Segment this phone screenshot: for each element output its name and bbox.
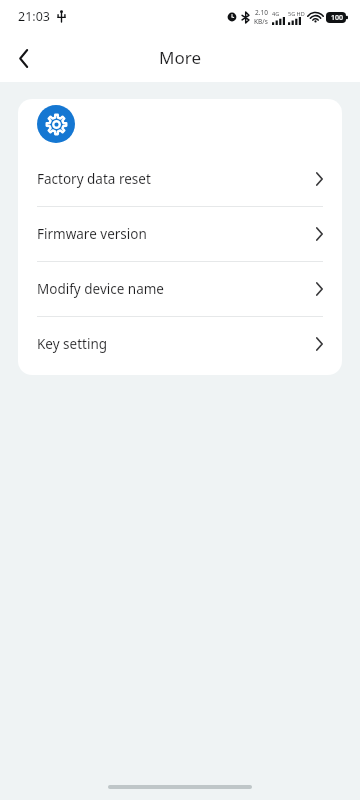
- button[interactable]: Settings: [37, 105, 75, 143]
- staticText: More: [159, 46, 201, 69]
- staticText: 5G HD: [288, 10, 305, 17]
- staticText: 2.10: [255, 8, 268, 17]
- button[interactable]: Firmware version: [18, 207, 342, 261]
- button[interactable]: Factory data reset: [18, 152, 342, 206]
- button[interactable]: Back: [0, 34, 48, 82]
- staticText: Modify device name: [37, 280, 316, 298]
- staticText: Key setting: [37, 335, 316, 353]
- staticText: 100: [331, 13, 344, 23]
- staticText: 4G: [272, 10, 280, 17]
- staticText: 21:03: [18, 8, 50, 25]
- staticText: Firmware version: [37, 225, 316, 243]
- staticText: Factory data reset: [37, 170, 316, 188]
- staticText: KB/s: [254, 17, 268, 26]
- button[interactable]: Key setting: [18, 317, 342, 371]
- button[interactable]: Modify device name: [18, 262, 342, 316]
